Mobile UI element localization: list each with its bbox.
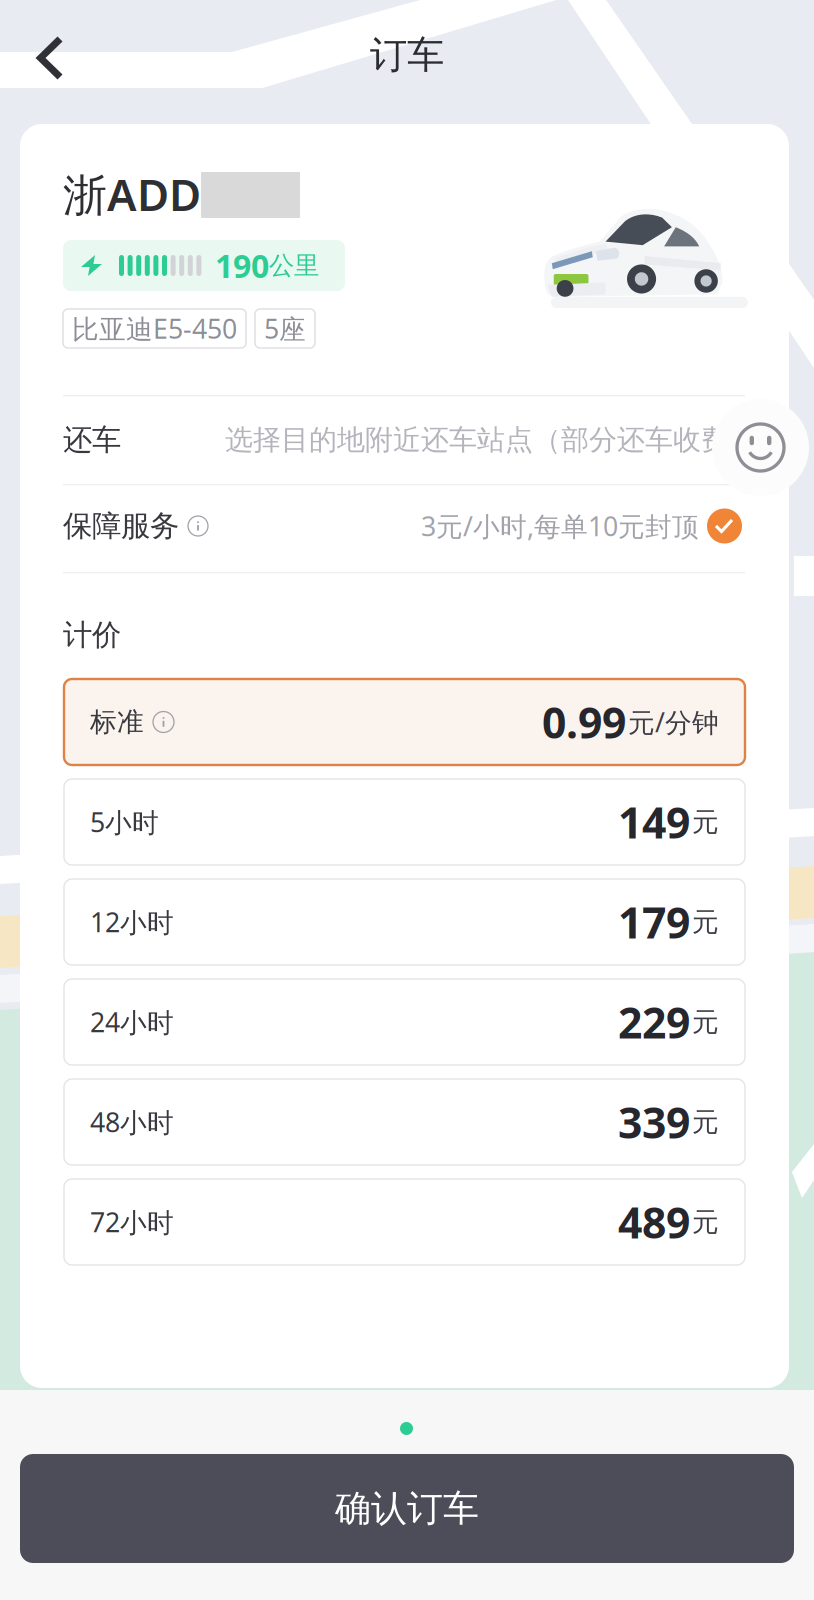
staticText: 3元/小时,每单10元封顶 xyxy=(421,508,699,544)
button[interactable]: Back xyxy=(8,17,90,99)
staticText: 元 xyxy=(692,1106,719,1138)
staticText: 229 xyxy=(618,994,690,1050)
button[interactable]: 24小时 xyxy=(64,979,745,1065)
button[interactable]: 确认订车 xyxy=(20,1454,794,1563)
staticText: 浙ADD xyxy=(63,165,201,223)
staticText: 12小时 xyxy=(90,904,174,940)
staticText: 489 xyxy=(618,1194,690,1250)
button[interactable]: 5小时 xyxy=(64,779,745,865)
button[interactable]: 72小时 xyxy=(64,1179,745,1265)
staticText: 订车 xyxy=(370,32,444,78)
staticText: 339 xyxy=(618,1094,690,1150)
staticText: 190 xyxy=(215,244,269,287)
staticText: 还车 xyxy=(63,422,121,458)
button[interactable]: 12小时 xyxy=(64,879,745,965)
staticText: 0.99 xyxy=(542,694,626,750)
staticText: 元 xyxy=(692,1006,719,1038)
staticText: 5座 xyxy=(264,311,306,346)
staticText: 元 xyxy=(692,806,719,838)
staticText: 保障服务 xyxy=(63,508,179,544)
button[interactable]: Feedback xyxy=(712,399,809,496)
button[interactable]: 48小时 xyxy=(64,1079,745,1165)
staticText: 元 xyxy=(692,906,719,938)
staticText: 计价 xyxy=(63,617,121,653)
staticText: 元 xyxy=(692,1206,719,1238)
staticText: 比亚迪E5-450 xyxy=(72,311,237,346)
staticText: 选择目的地附近还车站点（部分还车收费） xyxy=(225,423,757,457)
staticText: 48小时 xyxy=(90,1104,174,1140)
staticText: 72小时 xyxy=(90,1204,174,1240)
staticText: 标准 xyxy=(90,706,144,738)
button[interactable]: 标准 xyxy=(64,679,745,765)
staticText: 元/分钟 xyxy=(628,704,719,740)
staticText: 179 xyxy=(618,894,690,950)
staticText: 5小时 xyxy=(90,804,159,840)
staticText: 公里 xyxy=(269,250,319,281)
staticText: 149 xyxy=(618,794,690,850)
staticText: 确认订车 xyxy=(335,1486,479,1531)
staticText: 24小时 xyxy=(90,1004,174,1040)
